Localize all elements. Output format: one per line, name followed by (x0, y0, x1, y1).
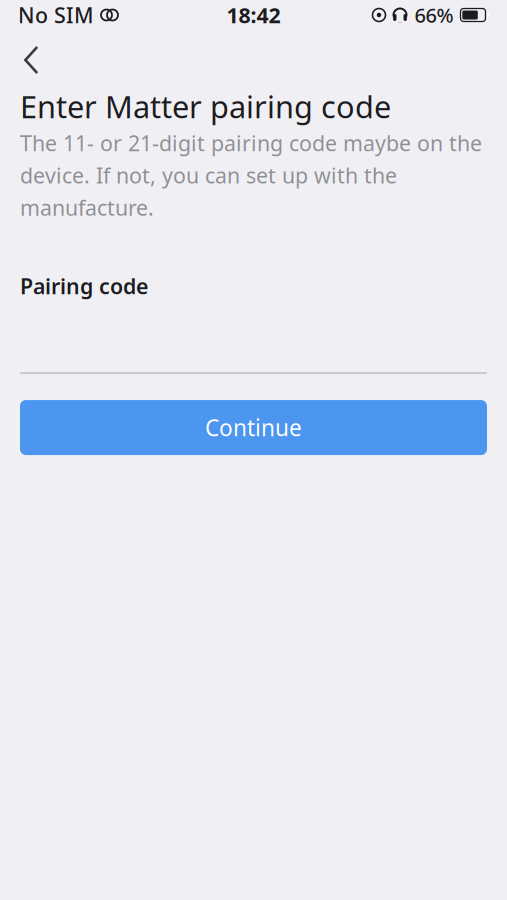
staticText: 66% (414, 2, 453, 28)
staticText: No SIM (18, 1, 94, 29)
staticText: The 11- or 21-digit pairing code maybe o… (20, 129, 482, 222)
button[interactable]: Back (8, 38, 54, 82)
staticText: 18:42 (226, 1, 280, 29)
staticText: Enter Matter pairing code (20, 86, 391, 127)
staticText: Pairing code (20, 272, 148, 300)
staticText: Continue (205, 412, 302, 443)
button[interactable]: Continue (20, 400, 487, 455)
